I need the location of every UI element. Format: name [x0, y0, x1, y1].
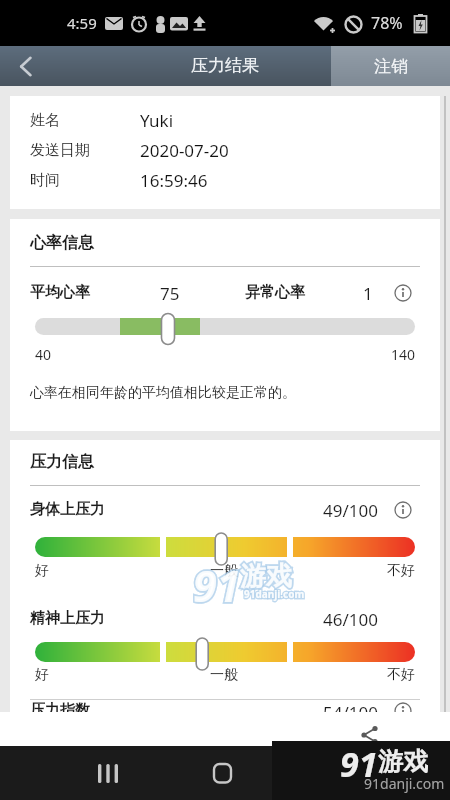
button[interactable] [394, 702, 412, 720]
staticText: 91danji.com [244, 587, 305, 601]
staticText: 精神上压力 [30, 609, 105, 628]
staticText: 91 [193, 556, 241, 615]
staticText: 压力指数 [30, 701, 90, 720]
staticText: 异常心率 [245, 283, 305, 302]
staticText: 2020-07-20 [140, 139, 229, 162]
button[interactable] [0, 46, 52, 86]
staticText: 好 [35, 666, 49, 684]
staticText: 49/100 [323, 499, 378, 522]
staticText: 身体上压力 [30, 500, 105, 519]
staticText: 140 [391, 345, 416, 364]
button[interactable] [394, 501, 412, 519]
staticText: 游戏 [378, 746, 428, 777]
staticText: 游戏 [240, 560, 292, 593]
staticText: Yuki [140, 109, 174, 132]
button[interactable] [213, 764, 232, 783]
staticText: 91 [193, 556, 241, 615]
staticText: 发送日期 [30, 141, 90, 160]
staticText: 不好 [387, 562, 415, 580]
staticText: 心率在相同年龄的平均值相比较是正常的。 [30, 384, 296, 402]
staticText: 78% [371, 12, 403, 34]
staticText: 16:59:46 [140, 169, 208, 192]
staticText: 心率信息 [30, 233, 94, 253]
staticText: 注销 [374, 56, 408, 77]
staticText: 46/100 [323, 608, 378, 631]
staticText: 压力信息 [30, 452, 94, 472]
button[interactable] [394, 284, 412, 302]
staticText: 91danji.com [364, 774, 445, 793]
button[interactable] [337, 764, 349, 783]
staticText: 1 [363, 282, 373, 305]
staticText: 40 [35, 345, 52, 364]
button[interactable] [361, 726, 379, 744]
staticText: 54/100 [323, 701, 378, 724]
staticText: 姓名 [30, 111, 60, 130]
button[interactable]: 注销 [331, 46, 450, 86]
staticText: 91 [340, 741, 378, 787]
staticText: 好 [35, 562, 49, 580]
staticText: 一般 [210, 562, 238, 580]
staticText: 75 [160, 282, 180, 305]
staticText: 平均心率 [30, 283, 90, 302]
staticText: 压力结果 [191, 55, 259, 76]
button[interactable] [98, 764, 119, 783]
staticText: 时间 [30, 171, 60, 190]
staticText: 4:59 [67, 13, 97, 33]
staticText: 不好 [387, 666, 415, 684]
staticText: 一般 [210, 666, 238, 684]
staticText: 91danji.com [244, 587, 305, 601]
staticText: 游戏 [240, 560, 292, 593]
